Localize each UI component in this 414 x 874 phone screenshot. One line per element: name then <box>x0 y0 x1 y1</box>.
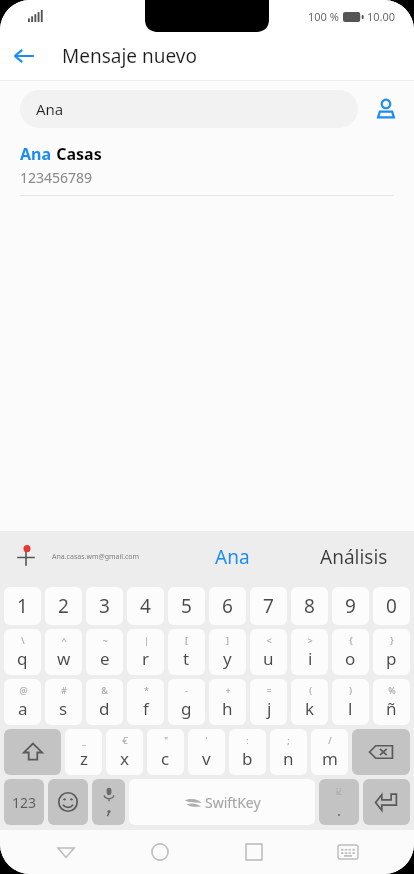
staticText: z <box>80 747 88 770</box>
staticText: ] <box>226 634 229 646</box>
button[interactable]: Enter <box>363 779 410 825</box>
button[interactable]: € <box>106 729 143 775</box>
button[interactable]: { <box>332 629 369 675</box>
button[interactable]: Backspace <box>352 729 410 775</box>
staticText: . <box>337 800 342 820</box>
staticText: i <box>308 647 313 670</box>
button[interactable]: / <box>311 729 348 775</box>
button[interactable]: Ana <box>172 531 293 583</box>
staticText: ñ <box>386 697 397 720</box>
staticText: u <box>263 647 274 670</box>
staticText: e <box>100 647 110 670</box>
button[interactable]: 123 <box>4 779 44 825</box>
button[interactable]: ~ <box>86 629 123 675</box>
button[interactable]: & <box>86 679 123 725</box>
staticText: 2 <box>58 593 69 619</box>
staticText: s <box>59 697 68 720</box>
button[interactable]: 2 <box>45 587 82 625</box>
staticText: p <box>386 647 397 670</box>
button[interactable]: Hide keyboard <box>320 830 376 874</box>
staticText: : <box>246 734 249 746</box>
button[interactable]: Home <box>132 830 188 874</box>
staticText: 7 <box>263 593 274 619</box>
staticText: k <box>305 697 315 720</box>
button[interactable]: > <box>291 629 328 675</box>
staticText: g <box>181 697 192 720</box>
button[interactable]: : <box>229 729 266 775</box>
button[interactable]: # <box>45 679 82 725</box>
staticText: Ana <box>36 99 64 119</box>
button[interactable]: ( <box>291 679 328 725</box>
staticText: 10.00 <box>367 9 396 24</box>
staticText: 123456789 <box>20 168 93 187</box>
button[interactable]: Análisis <box>293 531 414 583</box>
staticText: 8 <box>304 593 315 619</box>
button[interactable]: ] <box>209 629 246 675</box>
button[interactable]: " <box>147 729 184 775</box>
button[interactable]: @ <box>4 679 41 725</box>
staticText: - <box>185 684 188 696</box>
staticText: v <box>202 747 211 770</box>
button[interactable]: 5 <box>168 587 205 625</box>
other: Voice input <box>99 785 119 819</box>
staticText: n <box>283 747 294 770</box>
button[interactable]: ^ <box>45 629 82 675</box>
button[interactable]: + <box>209 679 246 725</box>
staticText: Ana <box>215 544 250 570</box>
staticText: { <box>349 634 353 646</box>
staticText: = <box>266 684 272 696</box>
button[interactable]: 7 <box>250 587 287 625</box>
button[interactable]: | <box>127 629 164 675</box>
button[interactable]: Period <box>319 779 359 825</box>
button[interactable]: ; <box>270 729 307 775</box>
button[interactable]: Pick contact <box>358 81 414 137</box>
staticText: w <box>57 647 71 670</box>
staticText: Ana.casas.wm@gmail.com <box>52 552 172 562</box>
button[interactable]: 9 <box>332 587 369 625</box>
button[interactable]: 3 <box>86 587 123 625</box>
staticText: < <box>266 634 272 646</box>
staticText: \ <box>21 634 25 646</box>
button[interactable]: Voice input <box>92 779 125 825</box>
button[interactable]: _ <box>65 729 102 775</box>
other: Period <box>336 784 342 820</box>
button[interactable]: - <box>168 679 205 725</box>
button[interactable]: Shift <box>4 729 61 775</box>
staticText: r <box>142 647 150 670</box>
button[interactable]: ' <box>188 729 225 775</box>
button[interactable]: 8 <box>291 587 328 625</box>
button[interactable]: < <box>250 629 287 675</box>
staticText: Casas <box>52 143 102 165</box>
staticText: / <box>328 734 332 746</box>
button[interactable]: ) <box>332 679 369 725</box>
staticText: d <box>99 697 110 720</box>
other: Emoji <box>57 791 79 813</box>
button[interactable]: = <box>250 679 287 725</box>
button[interactable]: } <box>373 629 410 675</box>
staticText: ' <box>205 734 208 746</box>
staticText: 6 <box>222 593 233 619</box>
staticText: 1 <box>17 593 28 619</box>
button[interactable]: 6 <box>209 587 246 625</box>
button[interactable]: \ <box>4 629 41 675</box>
button[interactable]: Back <box>0 32 48 80</box>
button[interactable]: Recents <box>226 830 282 874</box>
button[interactable]: Ana <box>20 90 358 128</box>
button[interactable]: Add <box>0 531 52 583</box>
button[interactable]: 4 <box>127 587 164 625</box>
button[interactable]: Emoji <box>48 779 88 825</box>
button[interactable]: [ <box>168 629 205 675</box>
staticText: @ <box>19 684 28 696</box>
button[interactable]: Back <box>38 830 94 874</box>
button[interactable]: Ana <box>0 137 414 196</box>
button[interactable]: % <box>373 679 410 725</box>
button[interactable]: * <box>127 679 164 725</box>
button[interactable]: Space <box>129 779 315 825</box>
staticText: | <box>144 634 149 646</box>
staticText: * <box>144 684 149 696</box>
staticText: Ana <box>20 143 52 165</box>
staticText: t <box>183 647 190 670</box>
staticText: } <box>390 634 394 646</box>
button[interactable]: 1 <box>4 587 41 625</box>
button[interactable]: 0 <box>373 587 410 625</box>
